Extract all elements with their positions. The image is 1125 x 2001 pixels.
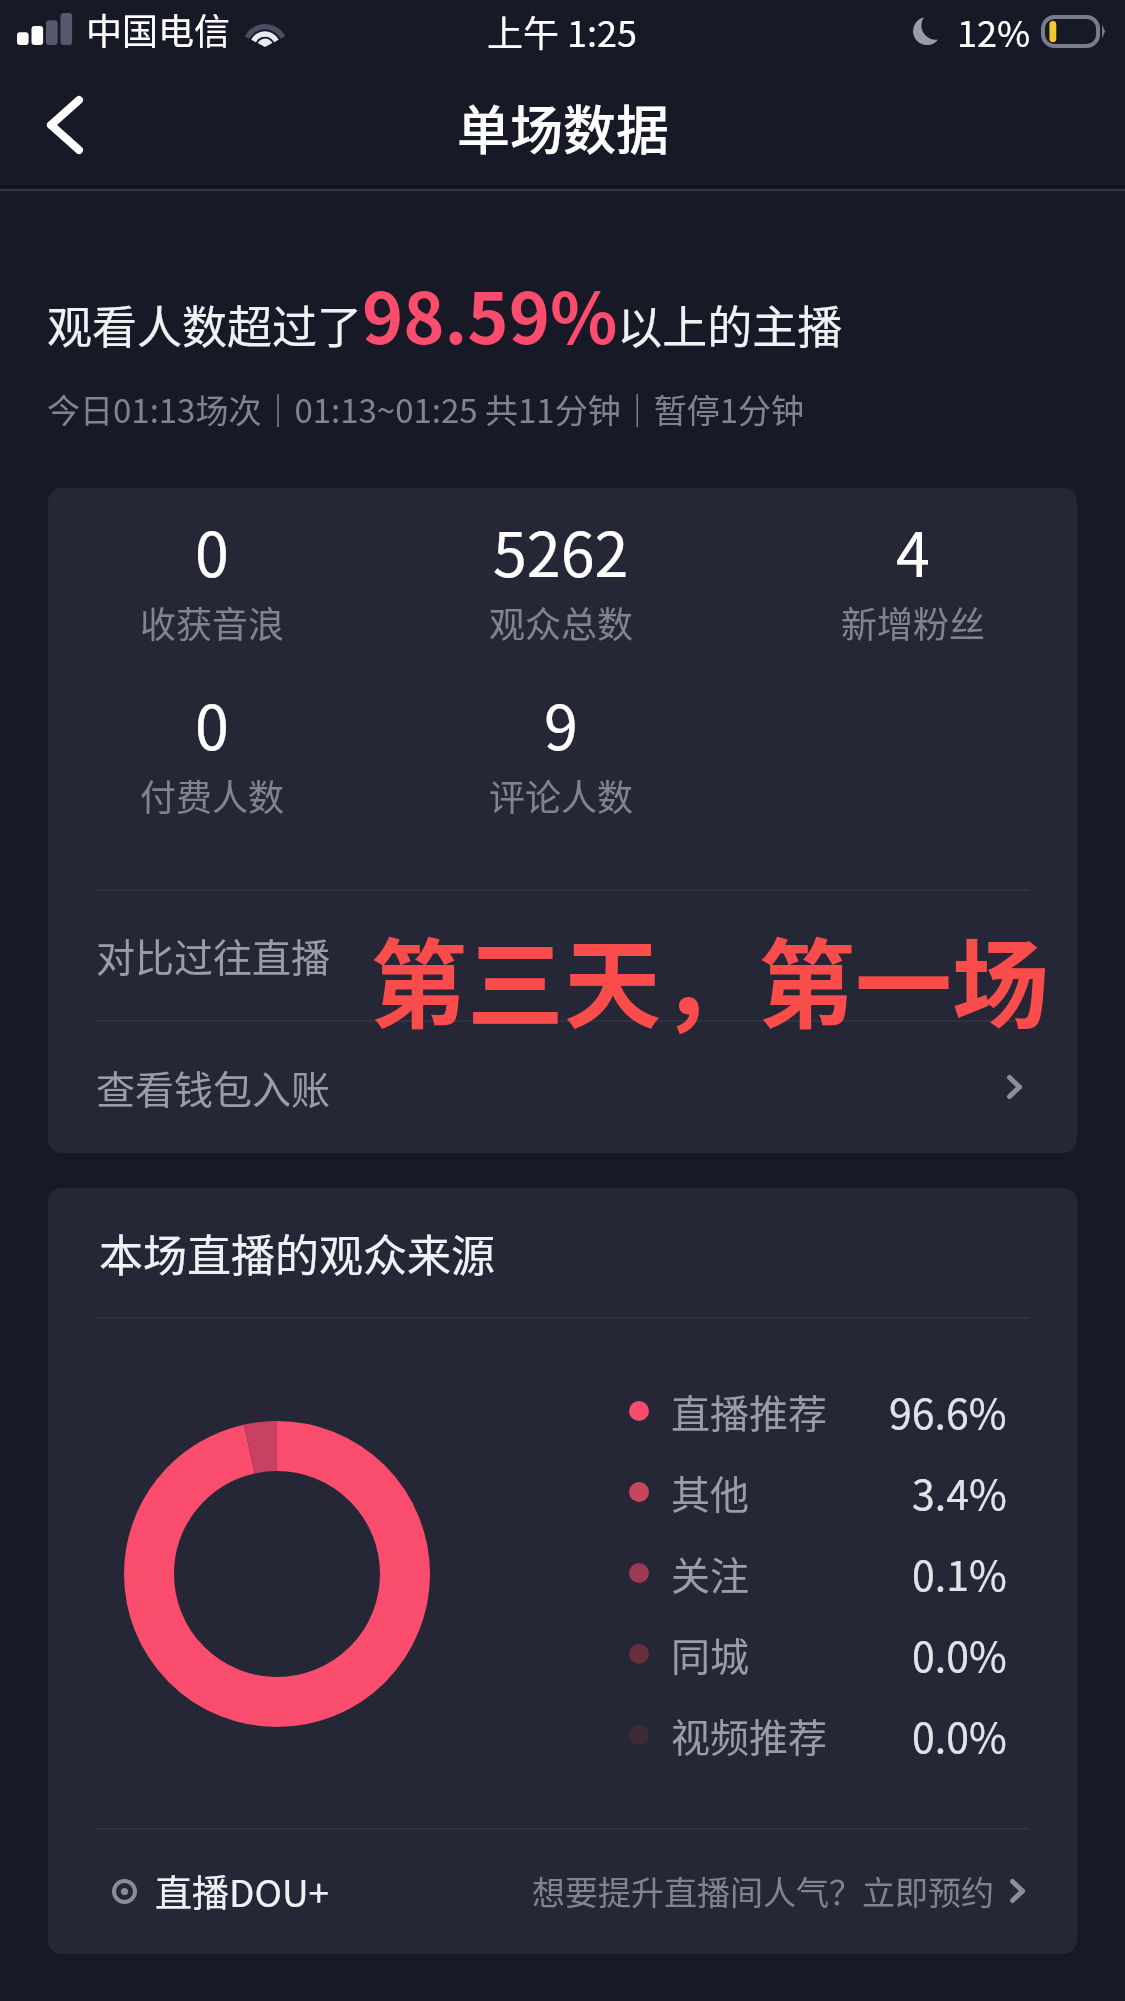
button[interactable]: 返回 (17, 77, 113, 173)
button[interactable]: 查看钱包入账 (48, 1020, 1077, 1153)
staticText: 0 (195, 506, 229, 594)
staticText: 上午 1:25 (487, 5, 638, 57)
staticText: 其他 (671, 1464, 750, 1520)
staticText: 查看钱包入账 (96, 1059, 331, 1115)
staticText: 3.4% (912, 1462, 1007, 1521)
staticText: 直播DOU+ (155, 1864, 330, 1918)
staticText: 想要提升直播间人气？立即预约 (532, 1867, 994, 1915)
staticText: 单场数据 (457, 89, 669, 166)
staticText: 第三天，第一场 (370, 907, 1049, 1047)
staticText: 评论人数 (489, 769, 634, 821)
staticText: 5262 (493, 506, 629, 594)
staticText: 0 (195, 679, 229, 767)
staticText: 视频推荐 (671, 1707, 828, 1763)
staticText: 新增粉丝 (841, 596, 986, 648)
staticText: 中国电信 (86, 3, 231, 55)
staticText: 96.6% (889, 1381, 1007, 1440)
staticText: 关注 (671, 1545, 750, 1601)
staticText: 4 (896, 506, 930, 594)
staticText: 12% (957, 5, 1031, 57)
button[interactable]: 对比过往直播 (48, 889, 1077, 1020)
staticText: 观众总数 (489, 596, 634, 648)
staticText: 收获音浪 (140, 596, 285, 648)
staticText: 0.0% (912, 1705, 1007, 1764)
staticText: 对比过往直播 (96, 927, 331, 983)
staticText: 同城 (671, 1626, 750, 1682)
staticText: 9 (544, 679, 578, 767)
staticText: 0.1% (912, 1543, 1007, 1602)
staticText: 付费人数 (140, 769, 285, 821)
staticText: 观看人数超过了98.59%以上的主播 (47, 263, 843, 364)
staticText: 今日01:13场次｜01:13~01:25 共11分钟｜暂停1分钟 (47, 385, 804, 433)
staticText: 本场直播的观众来源 (99, 1221, 495, 1285)
button[interactable]: 直播DOU+ (48, 1828, 1077, 1954)
staticText: 0.0% (912, 1624, 1007, 1683)
staticText: 直播推荐 (671, 1383, 828, 1439)
